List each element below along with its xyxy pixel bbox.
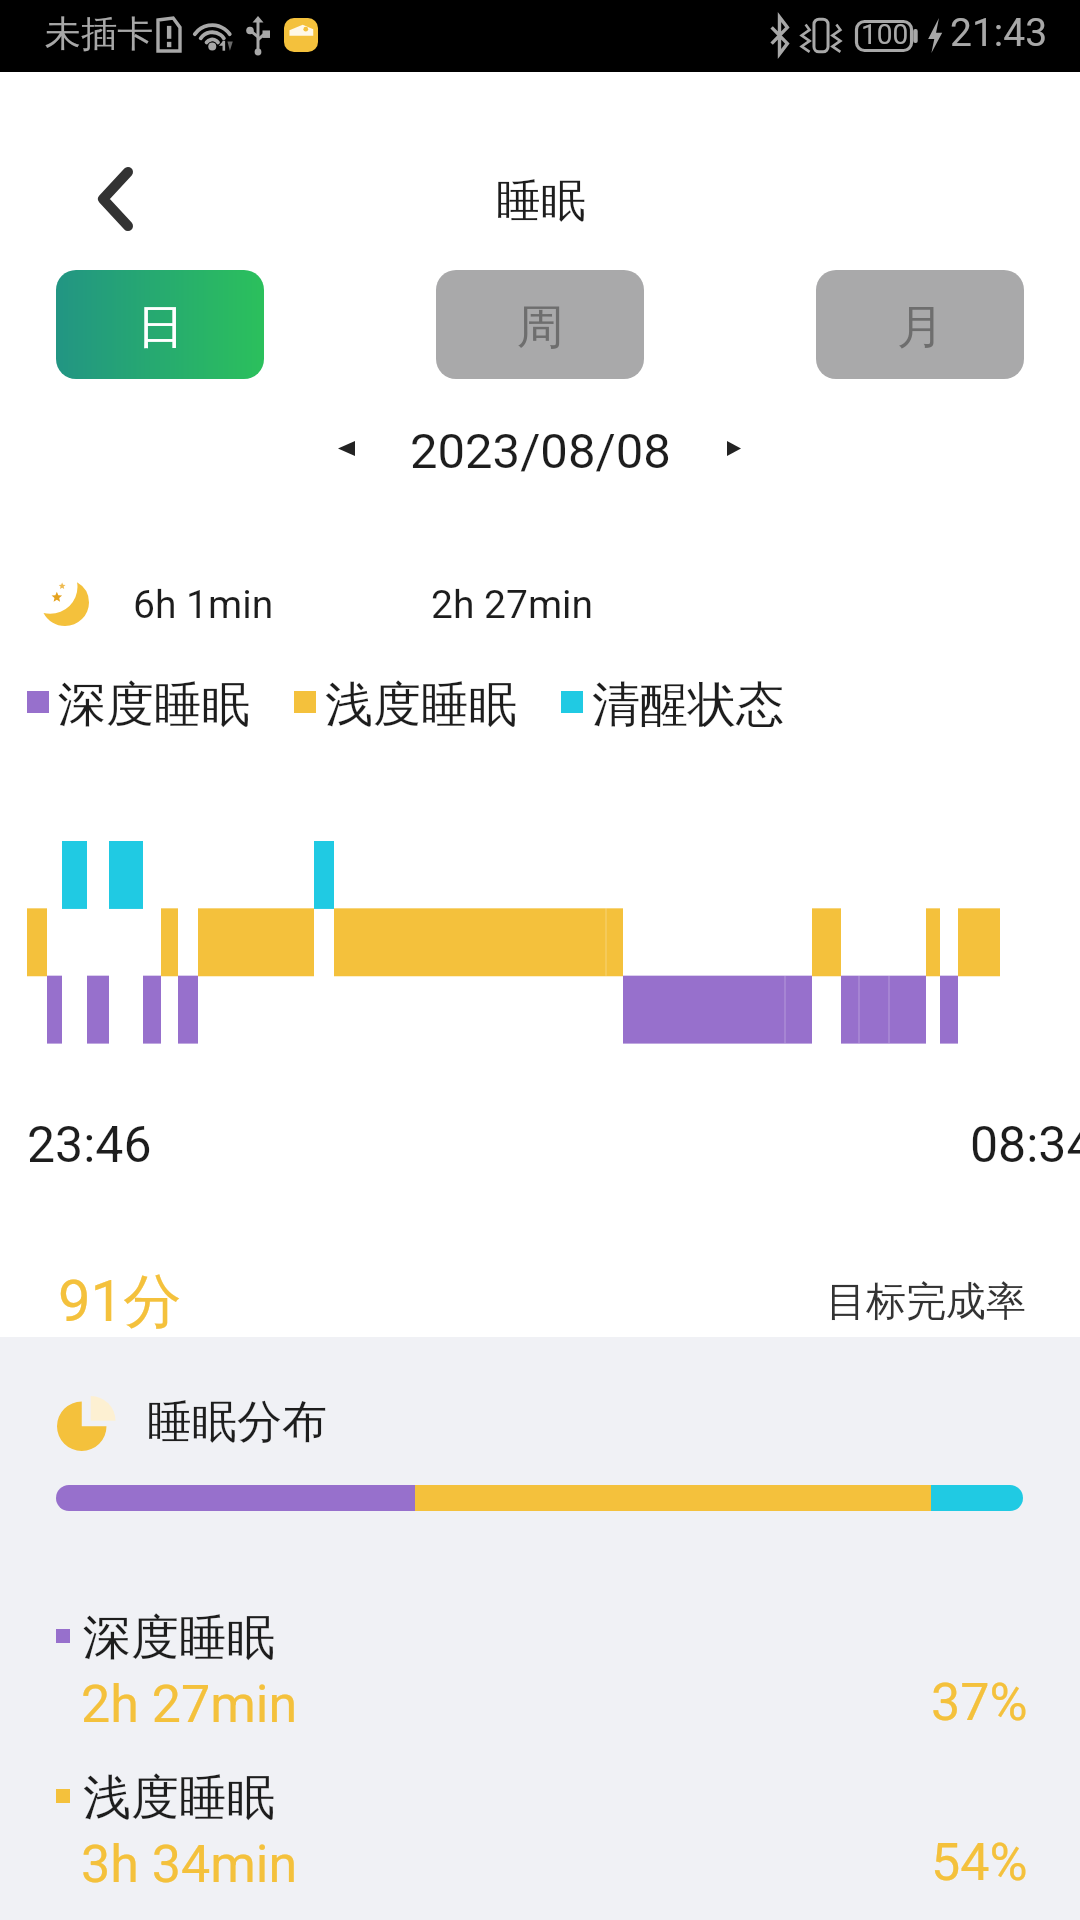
button[interactable]: Back	[74, 155, 158, 239]
staticText: 深度睡眠	[58, 675, 250, 735]
staticText: 08:34	[970, 1116, 1080, 1175]
staticText: 54%	[931, 1832, 1028, 1893]
staticText: 2023/08/08	[410, 423, 671, 480]
button[interactable]: 月	[816, 270, 1024, 379]
staticText: 21:43	[950, 10, 1048, 56]
button[interactable]: Next day	[706, 426, 766, 472]
staticText: 月	[897, 298, 944, 357]
button[interactable]: Previous day	[316, 426, 376, 472]
staticText: 23:46	[27, 1116, 152, 1175]
staticText: 2h 27min	[431, 582, 594, 628]
staticText: 周	[517, 298, 564, 357]
staticText: 91分	[58, 1265, 182, 1338]
staticText: 睡眠	[496, 173, 586, 230]
staticText: 6h 1min	[133, 582, 274, 628]
staticText: 37%	[931, 1672, 1028, 1733]
staticText: 100	[861, 18, 909, 50]
button[interactable]: 周	[436, 270, 644, 379]
staticText: 未插卡	[45, 11, 153, 56]
staticText: 清醒状态	[592, 675, 784, 735]
staticText: 3h 34min	[81, 1834, 298, 1895]
staticText: 浅度睡眠	[83, 1768, 275, 1828]
staticText: 目标完成率	[826, 1276, 1026, 1326]
staticText: 睡眠分布	[147, 1394, 327, 1451]
staticText: 日	[137, 298, 184, 357]
staticText: 深度睡眠	[83, 1608, 275, 1668]
button[interactable]: 日	[56, 270, 264, 379]
staticText: 浅度睡眠	[325, 675, 517, 735]
staticText: 2h 27min	[81, 1674, 298, 1735]
